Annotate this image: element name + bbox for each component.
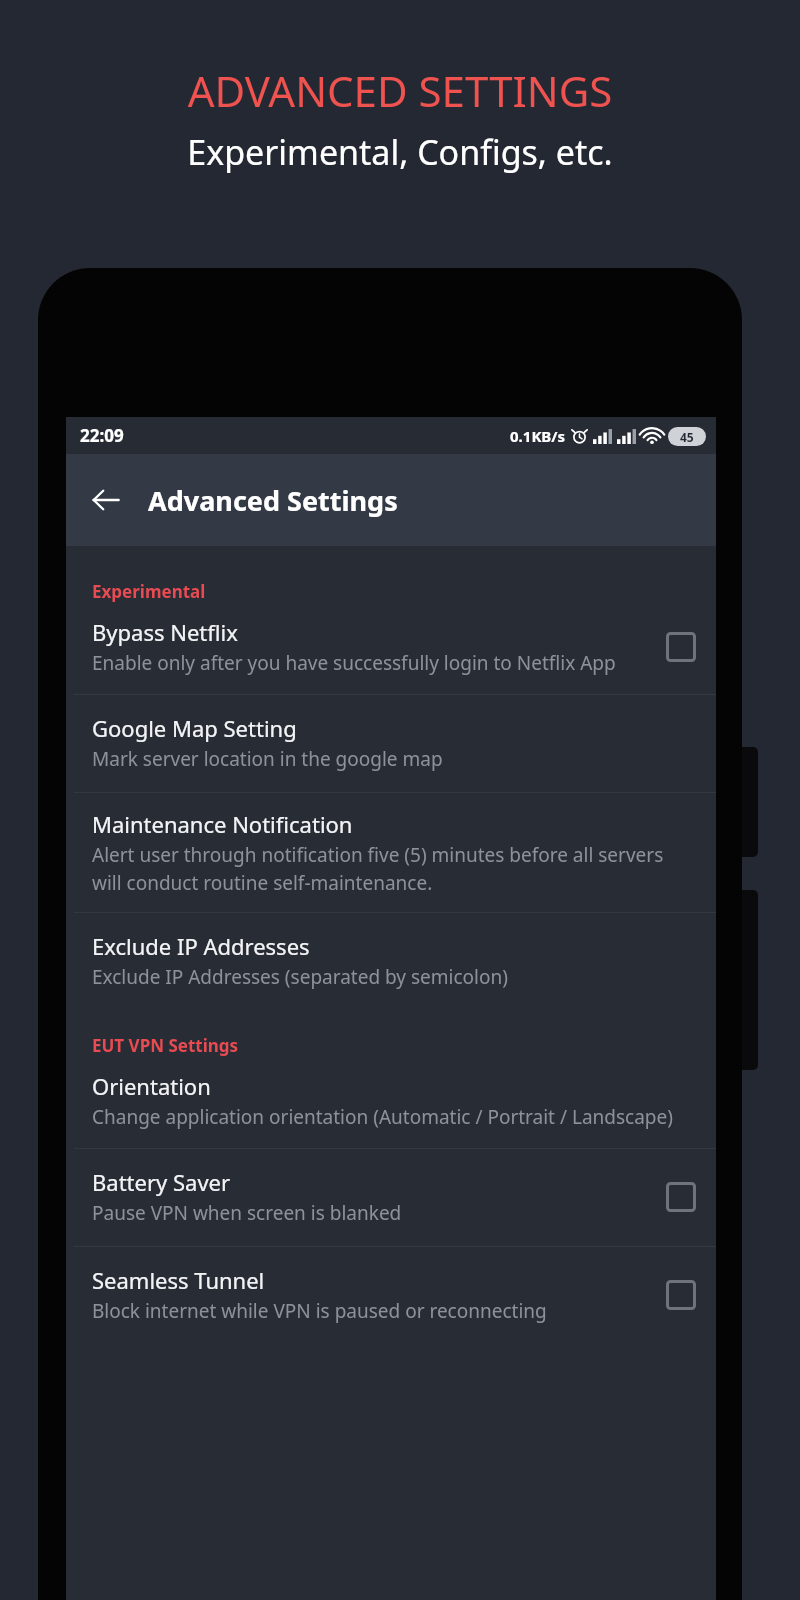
button[interactable]: Seamless Tunnel [66, 1247, 716, 1344]
button[interactable]: Battery Saver [66, 1149, 716, 1246]
staticText: Pause VPN when screen is blanked [92, 1200, 402, 1226]
staticText: Bypass Netflix [92, 617, 238, 647]
staticText: Seamless Tunnel [92, 1265, 265, 1295]
staticText: Exclude IP Addresses (separated by semic… [92, 964, 508, 990]
button[interactable]: Maintenance Notification [66, 793, 716, 912]
staticText: 45 [680, 429, 694, 445]
staticText: Google Map Setting [92, 713, 297, 743]
staticText: ADVANCED SETTINGS [0, 62, 800, 119]
staticText: Experimental [92, 580, 206, 603]
staticText: 22:09 [80, 424, 124, 447]
button[interactable]: Orientation [66, 1061, 716, 1148]
button[interactable]: Google Map Setting [66, 695, 716, 792]
staticText: Exclude IP Addresses [92, 931, 310, 961]
button[interactable]: Back [78, 472, 134, 528]
staticText: Experimental, Configs, etc. [0, 129, 800, 175]
staticText: Block internet while VPN is paused or re… [92, 1298, 547, 1324]
staticText: Maintenance Notification [92, 809, 353, 839]
staticText: Change application orientation (Automati… [92, 1104, 673, 1130]
staticText: 0.1KB/s [510, 426, 566, 446]
button[interactable]: Bypass Netflix [66, 607, 716, 694]
staticText: Alert user through notification five (5)… [92, 842, 696, 896]
staticText: Mark server location in the google map [92, 746, 443, 772]
staticText: EUT VPN Settings [92, 1034, 239, 1057]
staticText: Orientation [92, 1071, 211, 1101]
staticText: Enable only after you have successfully … [92, 650, 616, 676]
button[interactable]: Exclude IP Addresses [66, 913, 716, 1010]
staticText: Advanced Settings [148, 482, 398, 519]
staticText: Battery Saver [92, 1167, 231, 1197]
